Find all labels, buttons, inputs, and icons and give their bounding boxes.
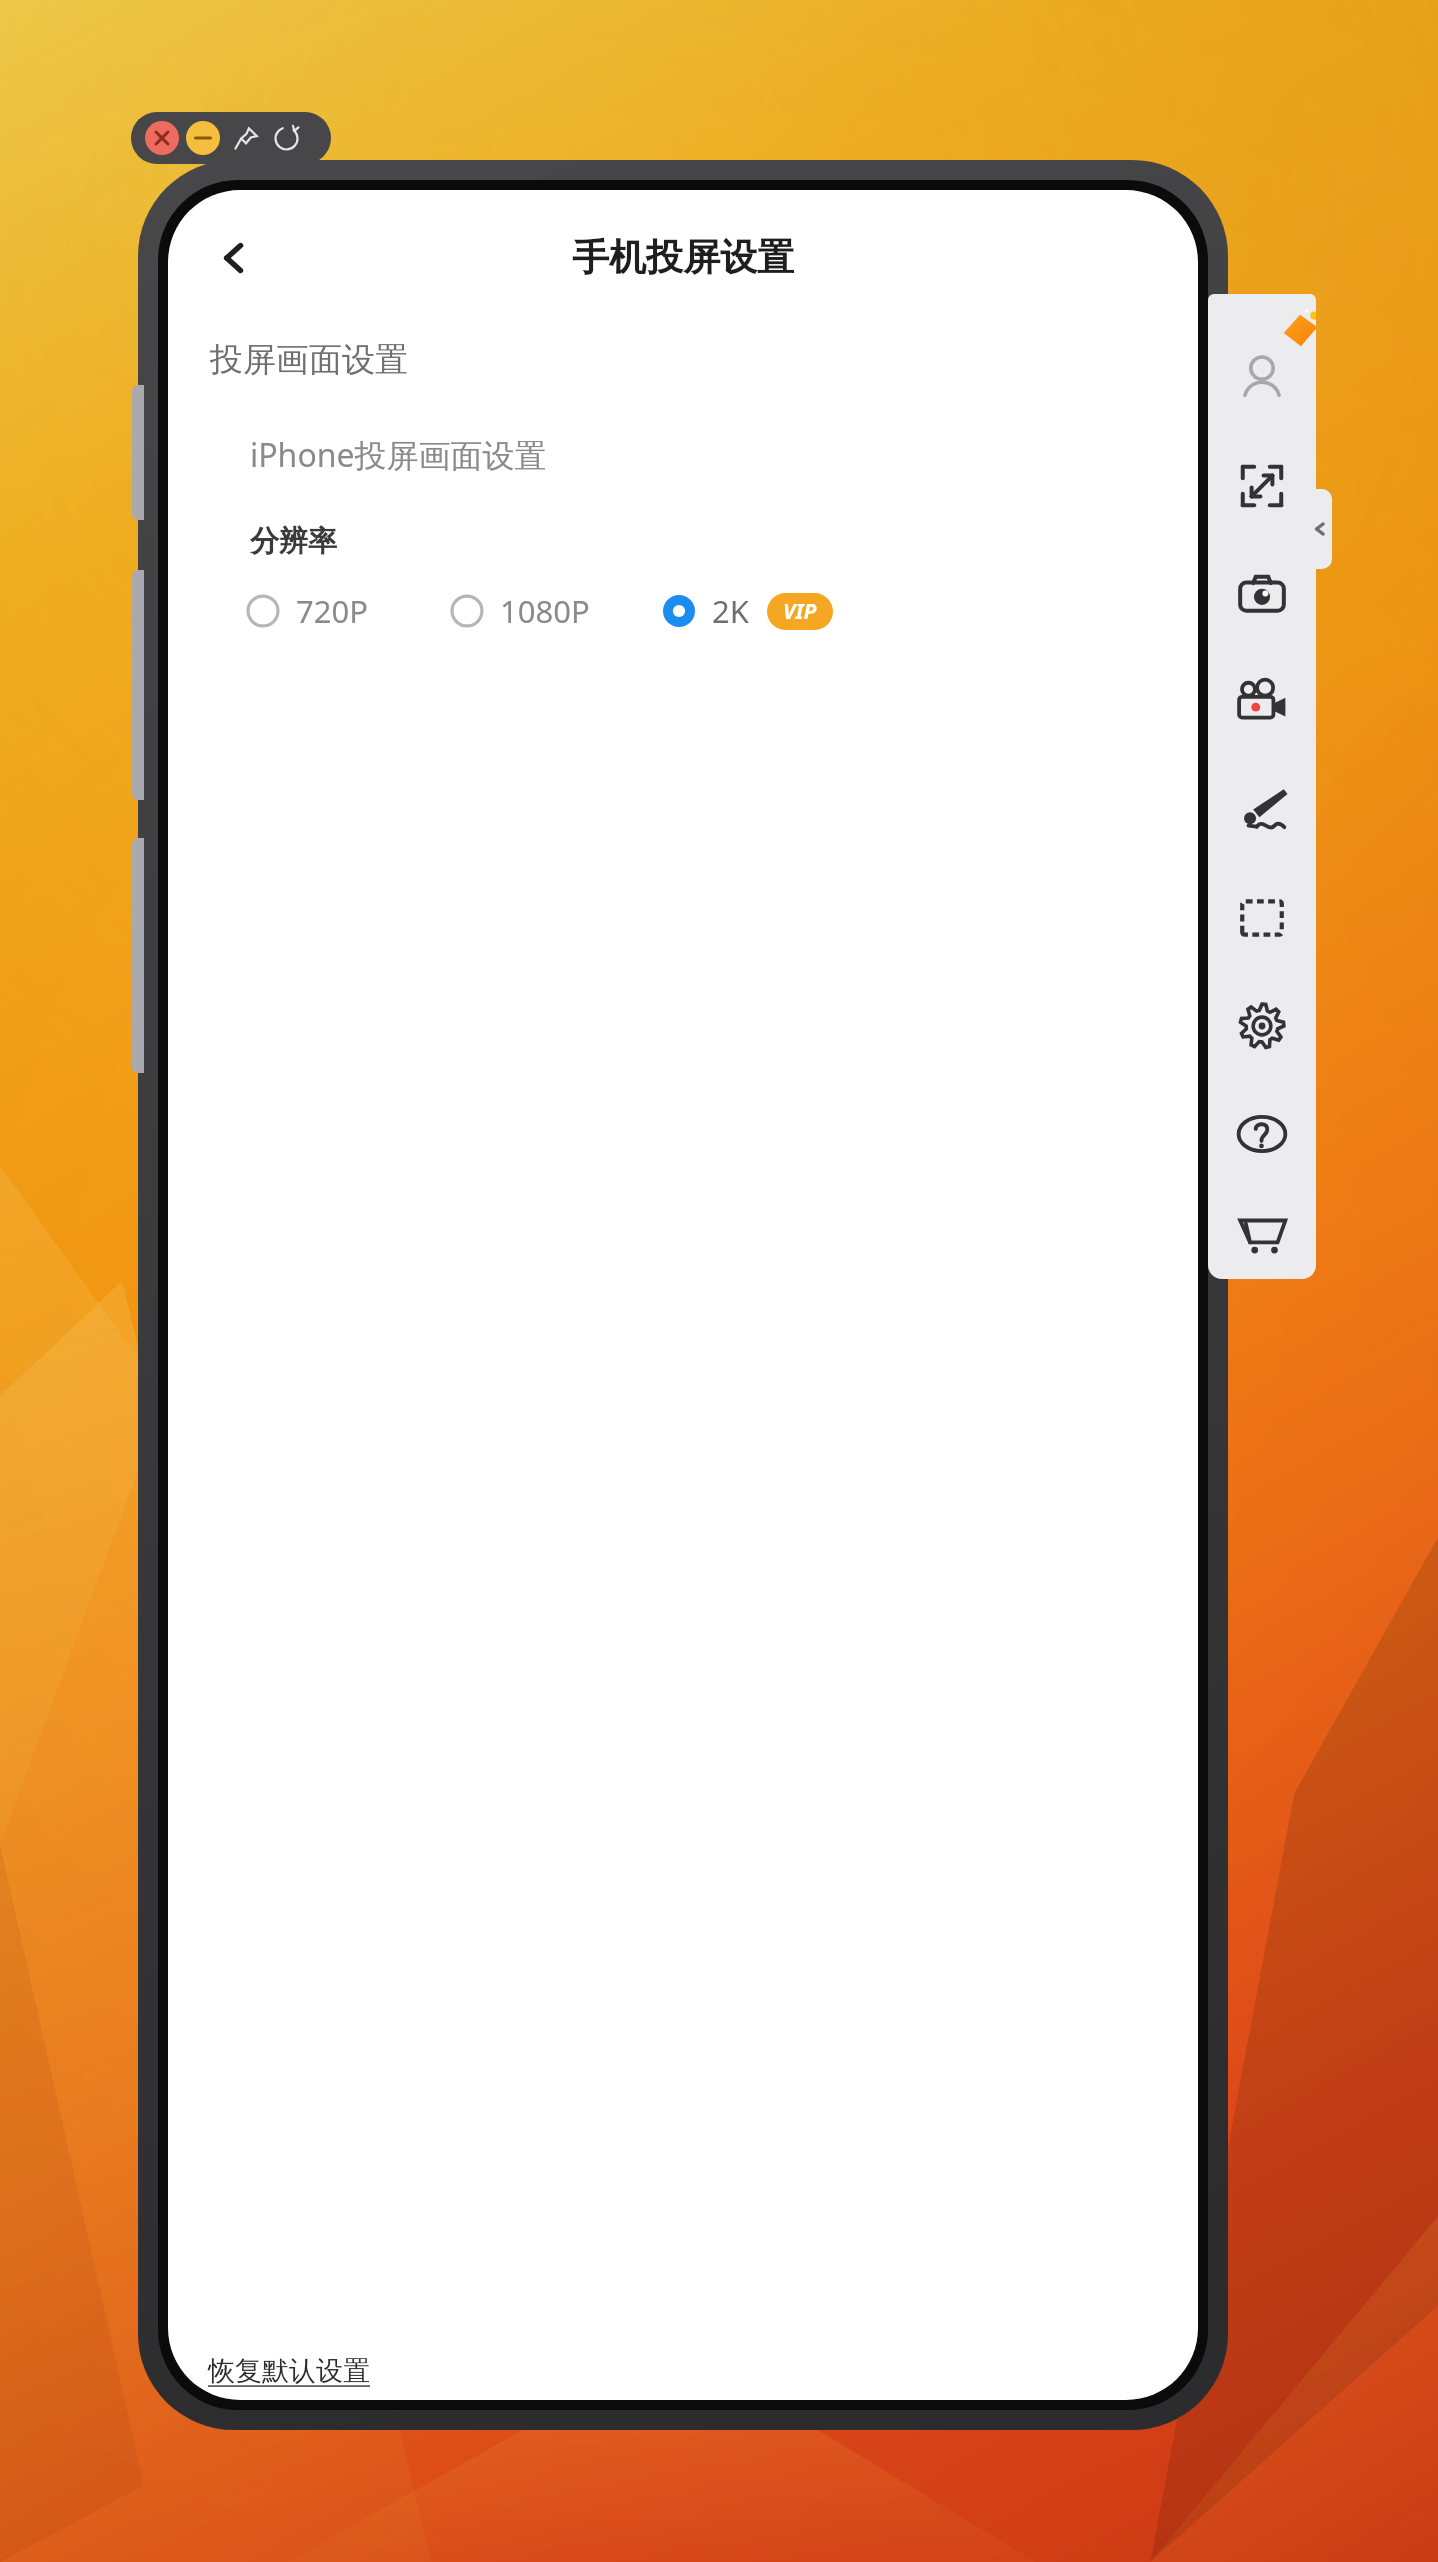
button[interactable]: Fullscreen [1208, 432, 1316, 540]
button[interactable]: 2K [662, 590, 749, 632]
staticText: 2K [712, 590, 749, 632]
button[interactable]: Back [192, 215, 278, 301]
staticText: 1080P [500, 590, 590, 632]
button[interactable]: Record [1208, 648, 1316, 756]
button[interactable]: Draw [1208, 756, 1316, 864]
button[interactable]: Help [1208, 1080, 1316, 1188]
staticText: 恢复默认设置 [208, 2354, 370, 2388]
button[interactable]: Minimize [186, 121, 220, 155]
button[interactable]: Screenshot [1208, 540, 1316, 648]
staticText: 手机投屏设置 [572, 234, 794, 281]
staticText: VIP [783, 597, 817, 626]
staticText: 720P [296, 590, 368, 632]
staticText: 投屏画面设置 [210, 339, 408, 381]
button[interactable]: Pin [229, 121, 263, 155]
button[interactable]: 720P [246, 590, 368, 632]
button[interactable]: 1080P [450, 590, 590, 632]
button[interactable]: Select region [1208, 864, 1316, 972]
button[interactable]: Rotate [269, 121, 303, 155]
staticText: 分辨率 [250, 523, 337, 560]
button[interactable]: Close [145, 121, 179, 155]
button[interactable]: Store [1208, 1188, 1316, 1279]
staticText: iPhone投屏画面设置 [250, 433, 547, 477]
button[interactable]: 恢复默认设置 [208, 2354, 370, 2388]
button[interactable]: Collapse toolbar [1308, 489, 1332, 569]
button[interactable]: Settings [1208, 972, 1316, 1080]
button[interactable]: VIP [767, 593, 833, 630]
button[interactable]: Account [1208, 324, 1316, 432]
